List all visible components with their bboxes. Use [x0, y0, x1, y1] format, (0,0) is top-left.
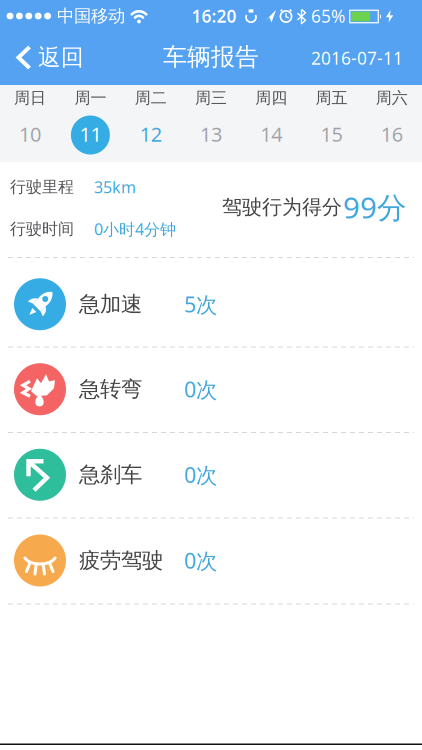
staticText: 16:20 — [191, 4, 236, 27]
staticText: 2016-07-11 — [311, 46, 403, 69]
button[interactable]: 急转弯 — [0, 347, 422, 433]
staticText: 65% — [311, 4, 345, 27]
staticText: 16 — [381, 121, 403, 147]
button[interactable]: 12 — [129, 113, 173, 155]
staticText: 周五 — [315, 88, 347, 108]
button[interactable]: 16 — [370, 113, 414, 155]
button[interactable]: 14 — [249, 113, 293, 155]
staticText: 行驶里程 — [10, 177, 74, 197]
button[interactable]: 15 — [309, 113, 353, 155]
staticText: 10 — [19, 121, 41, 147]
button[interactable]: 10 — [8, 113, 52, 155]
button[interactable]: 急刹车 — [0, 433, 422, 518]
staticText: 99分 — [343, 187, 406, 226]
staticText: 14 — [260, 121, 282, 147]
staticText: 急刹车 — [79, 462, 142, 488]
staticText: 疲劳驾驶 — [79, 547, 163, 574]
staticText: 13 — [200, 121, 222, 147]
staticText: 返回 — [38, 44, 84, 71]
staticText: 0次 — [184, 546, 217, 575]
staticText: 驾驶行为得分 — [222, 195, 342, 219]
button[interactable]: 2016-07-11 — [311, 46, 403, 69]
staticText: 周六 — [376, 88, 408, 108]
staticText: 周三 — [195, 88, 227, 108]
button[interactable]: 13 — [189, 113, 233, 155]
staticText: 11 — [79, 121, 101, 147]
staticText: 周日 — [14, 88, 46, 108]
button[interactable]: 返回 — [8, 44, 84, 71]
staticText: 5次 — [184, 290, 217, 318]
button[interactable]: 11 — [68, 113, 112, 155]
staticText: 35km — [94, 176, 136, 198]
staticText: 15 — [320, 121, 342, 147]
staticText: 周四 — [255, 88, 287, 108]
staticText: 周二 — [135, 88, 167, 108]
button[interactable]: 急加速 — [0, 258, 422, 347]
staticText: 急转弯 — [79, 376, 142, 402]
staticText: 急加速 — [79, 291, 142, 317]
staticText: 车辆报告 — [163, 42, 259, 72]
staticText: 12 — [140, 121, 162, 147]
staticText: 0小时4分钟 — [94, 218, 176, 240]
staticText: 0次 — [184, 461, 217, 489]
staticText: 周一 — [74, 88, 106, 108]
staticText: 0次 — [184, 375, 217, 403]
button[interactable]: 疲劳驾驶 — [0, 518, 422, 604]
staticText: 行驶时间 — [10, 219, 74, 239]
staticText: 中国移动 — [57, 5, 125, 27]
